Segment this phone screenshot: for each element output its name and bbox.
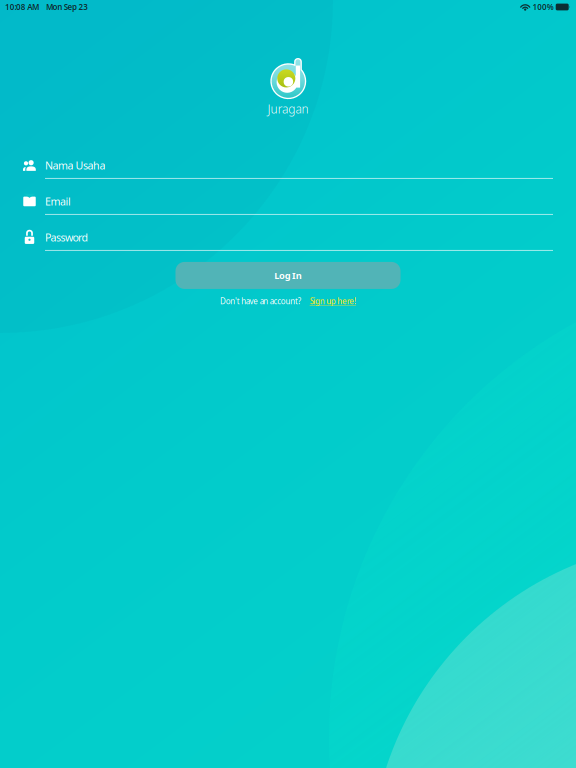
staticText: Email: [45, 194, 71, 209]
staticText: Log In: [274, 269, 302, 282]
staticText: Don't have an account?: [220, 296, 301, 306]
button[interactable]: Sign up here!: [301, 296, 356, 306]
staticText: Juragan: [267, 101, 309, 117]
staticText: 100%: [533, 2, 554, 12]
staticText: Sign up here!: [310, 296, 356, 306]
staticText: Password: [45, 230, 88, 245]
staticText: 10:08 AM: [5, 2, 39, 12]
button[interactable]: Log In: [175, 262, 400, 289]
staticText: Nama Usaha: [45, 158, 105, 173]
staticText: Mon Sep 23: [46, 2, 88, 12]
